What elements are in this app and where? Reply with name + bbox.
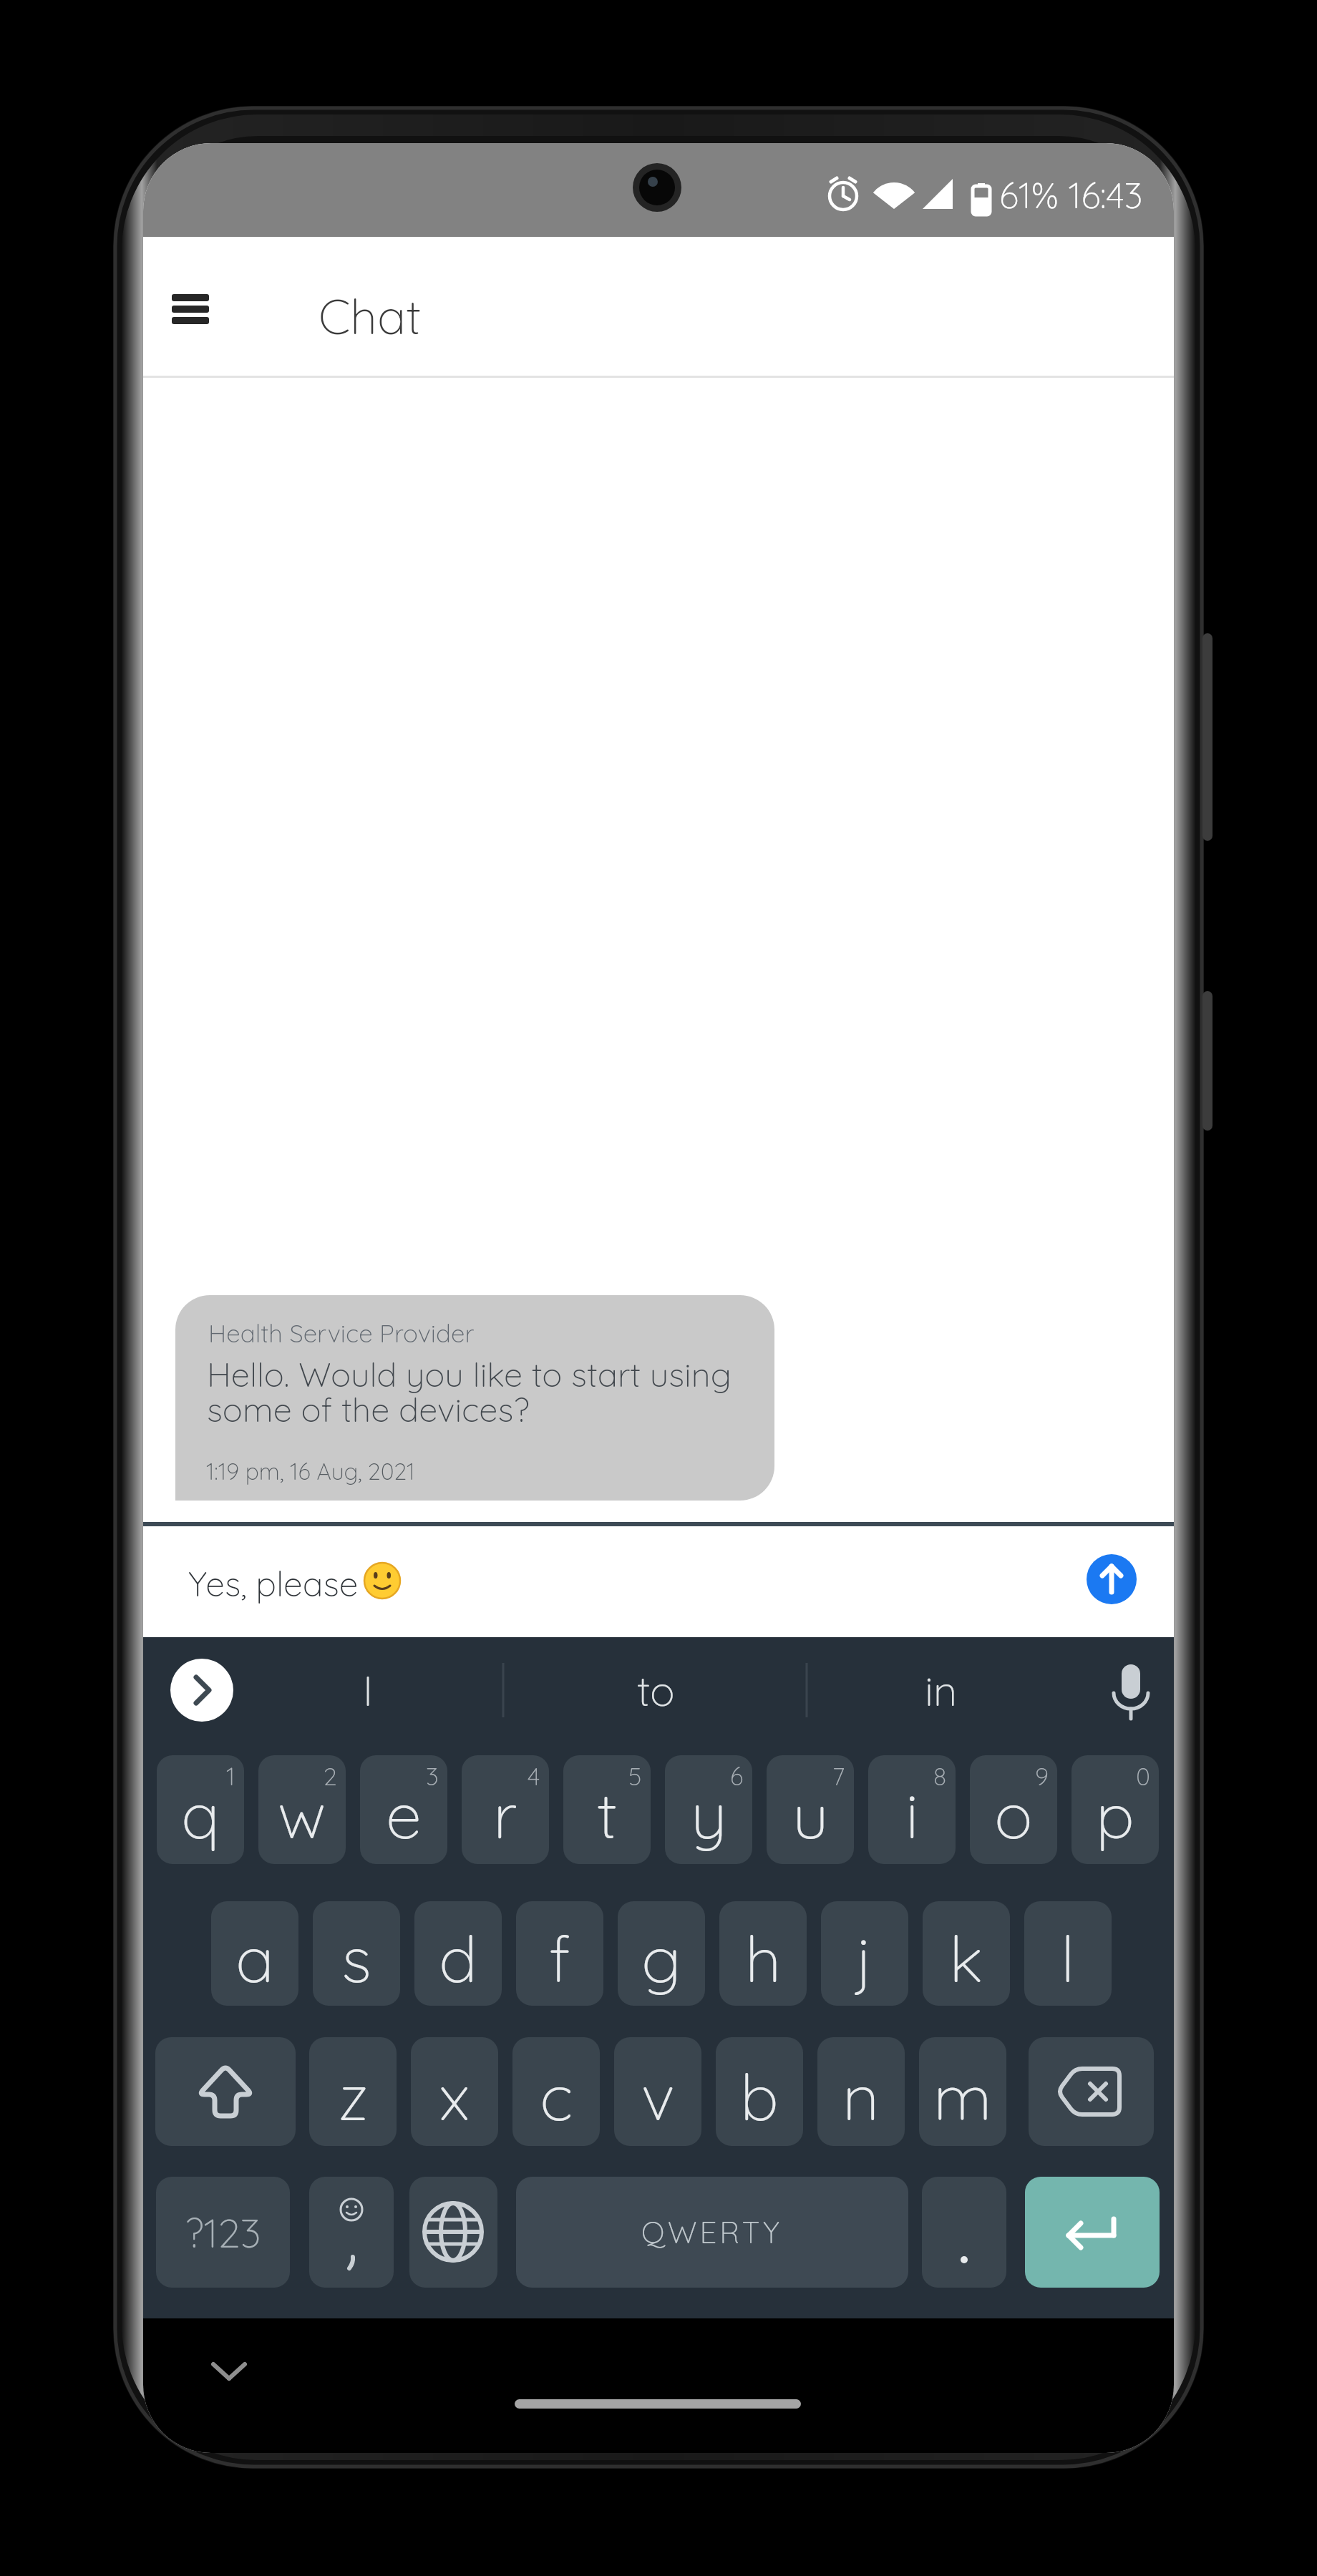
- staticText: m: [933, 2056, 992, 2137]
- button[interactable]: p: [1071, 1755, 1159, 1864]
- button[interactable]: e: [360, 1755, 447, 1864]
- staticText: s: [341, 1918, 371, 1999]
- staticText: 9: [1035, 1761, 1049, 1792]
- button[interactable]: c: [512, 2037, 600, 2146]
- staticText: 3: [426, 1761, 439, 1792]
- staticText: 5: [628, 1761, 642, 1792]
- staticText: to: [637, 1664, 675, 1717]
- button[interactable]: [309, 2177, 394, 2288]
- staticText: I: [363, 1664, 374, 1717]
- button[interactable]: o: [970, 1755, 1057, 1864]
- button[interactable]: [1087, 1554, 1137, 1604]
- button[interactable]: m: [919, 2037, 1006, 2146]
- staticText: o: [994, 1774, 1033, 1855]
- staticText: 0: [1136, 1761, 1150, 1792]
- staticText: 2: [324, 1761, 337, 1792]
- button[interactable]: s: [313, 1901, 400, 2006]
- button[interactable]: [922, 2177, 1006, 2288]
- button[interactable]: [409, 2177, 497, 2288]
- staticText: n: [842, 2056, 880, 2137]
- button[interactable]: q: [157, 1755, 244, 1864]
- button[interactable]: u: [767, 1755, 854, 1864]
- staticText: Chat: [319, 286, 422, 346]
- staticText: h: [745, 1918, 782, 1999]
- button[interactable]: [155, 2037, 296, 2146]
- staticText: f: [549, 1918, 571, 1999]
- staticText: y: [691, 1774, 727, 1855]
- button[interactable]: y: [665, 1755, 752, 1864]
- staticText: v: [641, 2056, 675, 2137]
- button[interactable]: [1025, 2177, 1160, 2288]
- button[interactable]: d: [414, 1901, 502, 2006]
- button[interactable]: r: [462, 1755, 549, 1864]
- staticText: ?123: [185, 2207, 261, 2258]
- staticText: QWERTY: [641, 2213, 783, 2251]
- button[interactable]: t: [563, 1755, 651, 1864]
- button[interactable]: a: [211, 1901, 298, 2006]
- staticText: w: [278, 1774, 326, 1855]
- button[interactable]: to: [591, 1663, 720, 1717]
- staticText: c: [540, 2056, 573, 2137]
- button[interactable]: n: [817, 2037, 905, 2146]
- staticText: 7: [832, 1761, 845, 1792]
- button[interactable]: [1029, 2037, 1154, 2146]
- button[interactable]: ?123: [156, 2177, 290, 2288]
- button[interactable]: g: [618, 1901, 705, 2006]
- staticText: r: [493, 1774, 517, 1855]
- staticText: 4: [528, 1761, 540, 1792]
- staticText: p: [1096, 1774, 1134, 1855]
- button[interactable]: b: [716, 2037, 803, 2146]
- button[interactable]: l: [1024, 1901, 1112, 2006]
- staticText: u: [792, 1774, 829, 1855]
- button[interactable]: QWERTY: [516, 2177, 908, 2288]
- staticText: 1: [226, 1761, 235, 1792]
- staticText: Health Service Provider: [208, 1317, 475, 1349]
- staticText: 8: [933, 1761, 947, 1792]
- button[interactable]: x: [411, 2037, 498, 2146]
- button[interactable]: [163, 286, 218, 333]
- staticText: z: [338, 2056, 369, 2137]
- button[interactable]: k: [923, 1901, 1010, 2006]
- button[interactable]: z: [309, 2037, 397, 2146]
- staticText: d: [439, 1918, 477, 1999]
- staticText: t: [597, 1774, 618, 1855]
- staticText: l: [1061, 1918, 1075, 1999]
- staticText: 6: [730, 1761, 744, 1792]
- staticText: q: [181, 1774, 220, 1855]
- staticText: in: [925, 1664, 958, 1717]
- staticText: j: [856, 1918, 874, 1999]
- staticText: a: [235, 1918, 274, 1999]
- staticText: Yes, please: [188, 1562, 359, 1605]
- button[interactable]: j: [821, 1901, 908, 2006]
- button[interactable]: w: [258, 1755, 346, 1864]
- staticText: e: [386, 1774, 422, 1855]
- staticText: b: [740, 2056, 779, 2137]
- button[interactable]: i: [868, 1755, 956, 1864]
- button[interactable]: [170, 1659, 233, 1722]
- button[interactable]: v: [614, 2037, 701, 2146]
- button[interactable]: f: [516, 1901, 603, 2006]
- staticText: k: [949, 1918, 983, 1999]
- staticText: 61% 16:43: [999, 172, 1143, 218]
- staticText: Hello. Would you like to start using som…: [207, 1353, 732, 1430]
- button[interactable]: I: [303, 1663, 432, 1717]
- staticText: 1:19 pm, 16 Aug, 2021: [206, 1457, 415, 1485]
- staticText: i: [905, 1774, 919, 1855]
- staticText: g: [641, 1918, 681, 1999]
- button[interactable]: in: [877, 1663, 1006, 1717]
- staticText: x: [439, 2056, 470, 2137]
- button[interactable]: h: [719, 1901, 807, 2006]
